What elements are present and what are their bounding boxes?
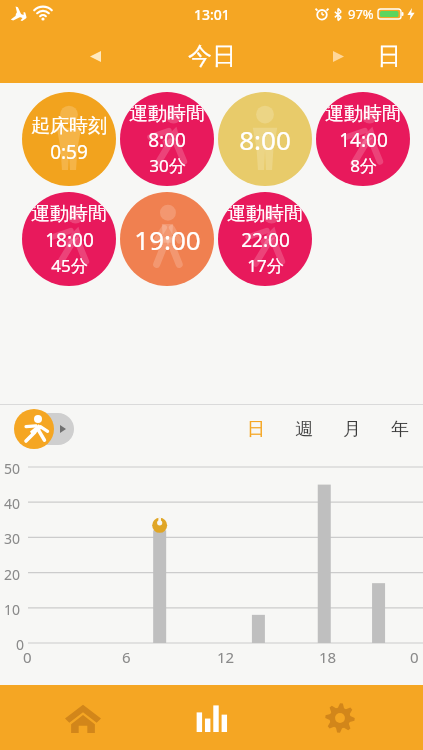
button[interactable]: 日 bbox=[247, 418, 265, 441]
button[interactable]: Previous day bbox=[80, 41, 110, 71]
button[interactable]: 日 bbox=[377, 41, 401, 71]
button[interactable]: 運動時間 bbox=[316, 92, 410, 186]
staticText: 年 bbox=[391, 418, 409, 441]
staticText: 8:00 bbox=[148, 127, 186, 153]
staticText: 45分 bbox=[51, 254, 88, 277]
staticText: 97% bbox=[348, 5, 374, 23]
staticText: 12 bbox=[217, 647, 235, 667]
staticText: 17分 bbox=[247, 254, 284, 277]
staticText: 起床時刻 bbox=[31, 114, 107, 138]
staticText: 運動時間 bbox=[325, 102, 401, 126]
button[interactable]: 運動時間 bbox=[22, 192, 116, 286]
staticText: 19:00 bbox=[134, 222, 201, 257]
button[interactable]: 年 bbox=[391, 418, 409, 441]
staticText: 週 bbox=[295, 418, 313, 441]
button[interactable]: 8:00 bbox=[218, 92, 312, 186]
staticText: 6 bbox=[122, 647, 131, 667]
button[interactable]: 運動時間 bbox=[120, 92, 214, 186]
staticText: 20 bbox=[4, 565, 21, 584]
staticText: 8分 bbox=[350, 154, 377, 177]
staticText: 0 bbox=[410, 647, 419, 667]
staticText: 日 bbox=[247, 418, 265, 441]
button[interactable]: 月 bbox=[343, 418, 361, 441]
staticText: 0 bbox=[16, 635, 25, 654]
staticText: 13:01 bbox=[194, 5, 230, 24]
button[interactable]: 運動時間 bbox=[218, 192, 312, 286]
staticText: 18:00 bbox=[45, 227, 94, 253]
staticText: 40 bbox=[4, 494, 21, 513]
staticText: 運動時間 bbox=[31, 202, 107, 226]
staticText: 8:00 bbox=[239, 122, 291, 157]
staticText: 0:59 bbox=[50, 139, 88, 165]
button[interactable]: 19:00 bbox=[120, 192, 214, 286]
staticText: 18 bbox=[319, 647, 337, 667]
staticText: 10 bbox=[4, 600, 21, 619]
button[interactable]: Statistics bbox=[167, 685, 257, 750]
button[interactable]: 週 bbox=[295, 418, 313, 441]
button[interactable]: Home bbox=[38, 685, 128, 750]
staticText: 月 bbox=[343, 418, 361, 441]
button[interactable]: 起床時刻 bbox=[22, 92, 116, 186]
staticText: 30 bbox=[4, 529, 21, 548]
staticText: 50 bbox=[4, 459, 21, 478]
button[interactable]: 今日 bbox=[188, 41, 236, 71]
staticText: 運動時間 bbox=[129, 102, 205, 126]
staticText: 22:00 bbox=[241, 227, 290, 253]
staticText: 運動時間 bbox=[227, 202, 303, 226]
staticText: 14:00 bbox=[339, 127, 388, 153]
staticText: 30分 bbox=[149, 154, 186, 177]
staticText: 0 bbox=[23, 647, 32, 667]
button[interactable]: Settings bbox=[295, 685, 385, 750]
button[interactable]: Activity type bbox=[14, 409, 76, 449]
button[interactable]: Next day bbox=[323, 41, 353, 71]
